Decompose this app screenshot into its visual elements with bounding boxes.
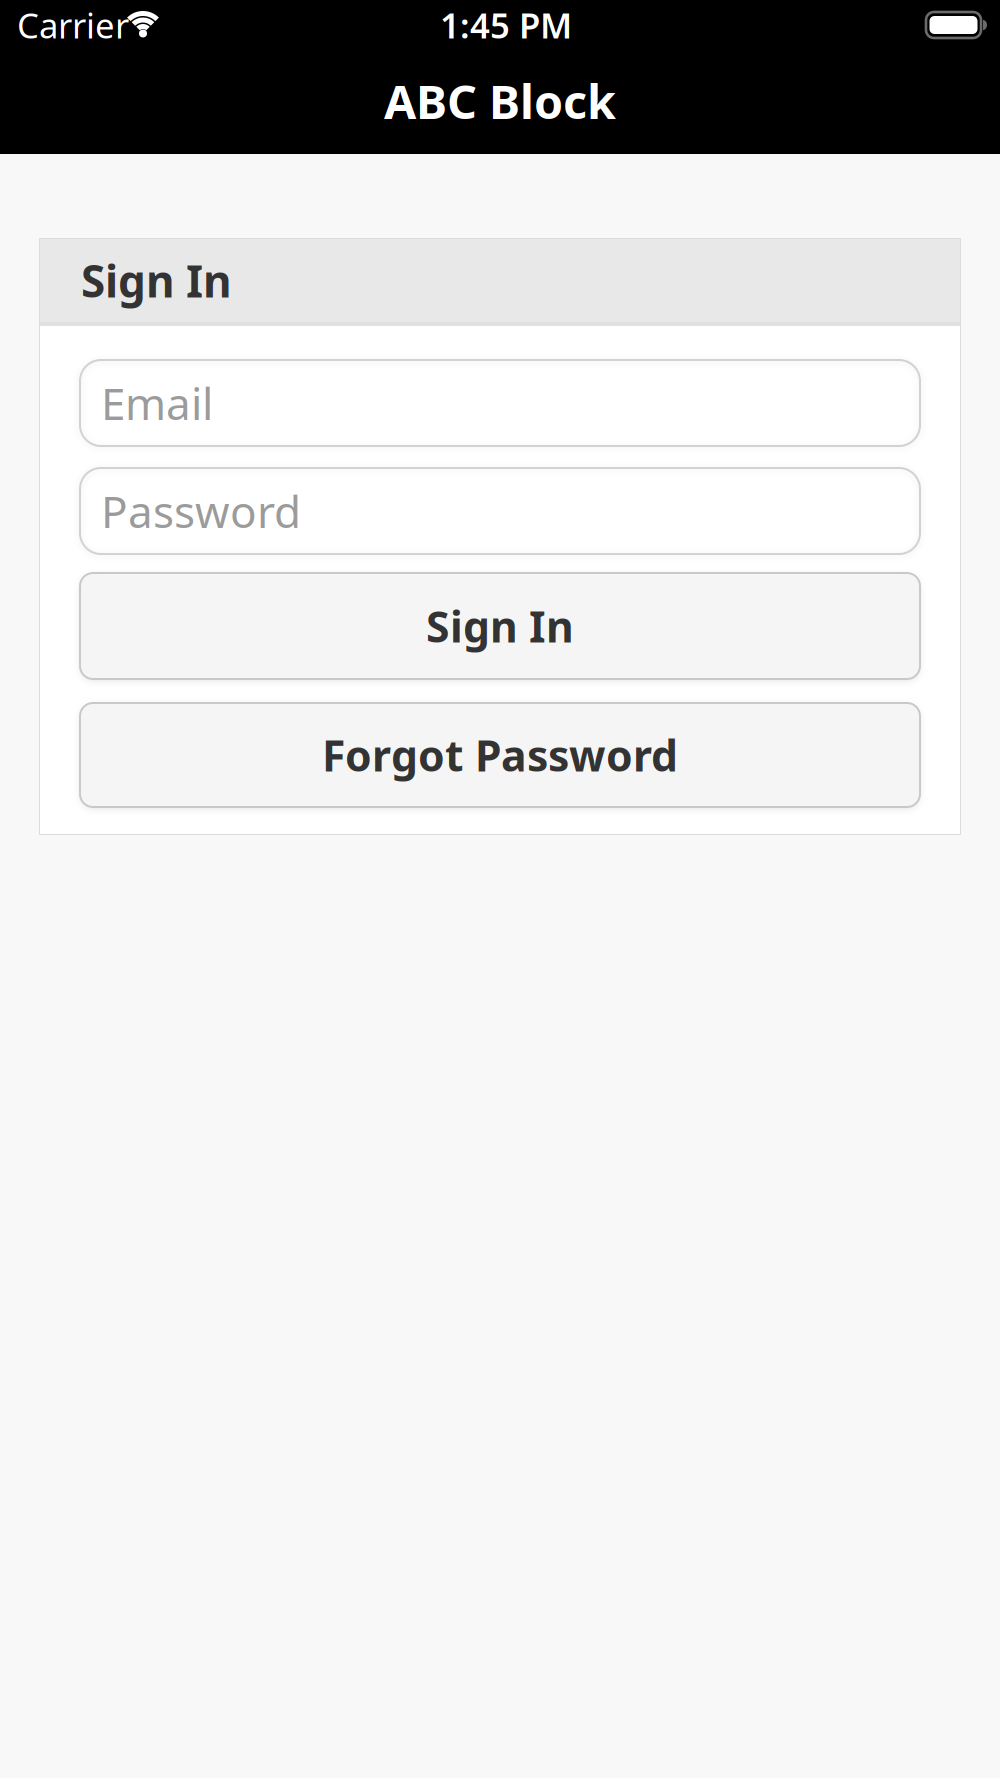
button[interactable]: Email — [80, 360, 920, 446]
staticText: Forgot Password — [322, 727, 678, 783]
staticText: ABC Block — [384, 70, 616, 132]
staticText: Email — [101, 374, 213, 432]
button[interactable]: Password — [80, 468, 920, 554]
staticText: 1:45 PM — [440, 2, 572, 48]
staticText: Sign In — [81, 251, 232, 310]
button[interactable]: Forgot Password — [80, 703, 920, 807]
staticText: Carrier — [17, 2, 129, 48]
button[interactable]: Sign In — [80, 573, 920, 679]
staticText: Sign In — [426, 598, 574, 654]
staticText: Password — [101, 482, 301, 540]
